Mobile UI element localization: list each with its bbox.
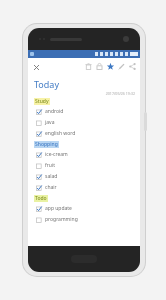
staticText: Shopping [35, 141, 58, 148]
button[interactable]: programming [34, 214, 135, 225]
button[interactable]: chair [34, 182, 135, 193]
staticText: salad [45, 173, 58, 180]
staticText: android [45, 108, 64, 115]
button[interactable]: Shopping [35, 141, 58, 148]
button[interactable]: ice-cream [34, 149, 135, 160]
staticText: Todo [35, 195, 47, 202]
staticText: java [45, 119, 55, 126]
button[interactable]: Edit [116, 61, 127, 72]
staticText: Study [35, 98, 49, 105]
staticText: Today [34, 78, 59, 90]
staticText: 2017/05/26 19:32 [34, 91, 135, 96]
button[interactable]: app update [34, 203, 135, 214]
button[interactable]: java [34, 117, 135, 128]
button[interactable]: Delete [83, 61, 94, 72]
staticText: english word [45, 130, 76, 137]
staticText: fruit [45, 162, 55, 169]
button[interactable]: Lock [94, 61, 105, 72]
staticText: programming [45, 216, 78, 223]
button[interactable]: Share [127, 61, 138, 72]
button[interactable]: Close [30, 61, 42, 73]
button[interactable]: english word [34, 128, 135, 139]
button[interactable]: salad [34, 171, 135, 182]
button[interactable]: Favorite [105, 61, 116, 72]
button[interactable]: android [34, 106, 135, 117]
button[interactable]: Study [35, 98, 49, 105]
button[interactable]: Todo [35, 195, 47, 202]
staticText: ice-cream [45, 151, 68, 158]
staticText: app update [45, 205, 72, 212]
button[interactable]: fruit [34, 160, 135, 171]
staticText: chair [45, 184, 57, 191]
